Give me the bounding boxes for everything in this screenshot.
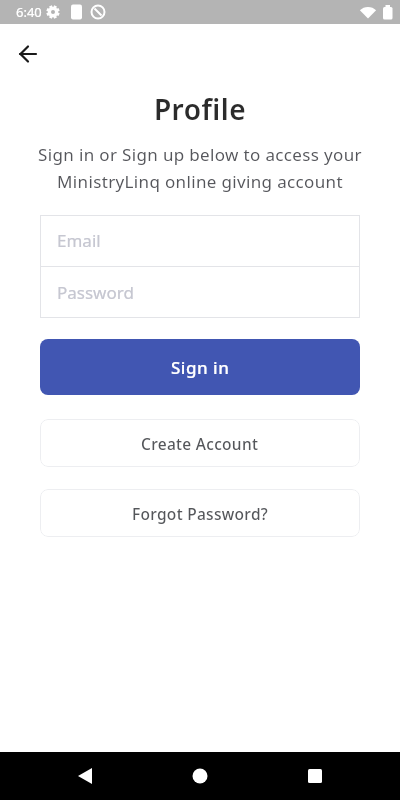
- staticText: Forgot Password?: [132, 503, 269, 524]
- staticText: Sign in or Sign up below to access your …: [0, 143, 400, 193]
- button[interactable]: Sign in: [40, 339, 360, 395]
- button[interactable]: [134, 752, 267, 800]
- button[interactable]: Create Account: [40, 419, 360, 467]
- staticText: Profile: [0, 90, 400, 128]
- staticText: Email: [57, 229, 101, 252]
- button[interactable]: Email: [40, 215, 360, 266]
- button[interactable]: Forgot Password?: [40, 489, 360, 537]
- button[interactable]: Password: [40, 267, 360, 318]
- staticText: 6:40: [16, 3, 42, 21]
- button[interactable]: [0, 752, 134, 800]
- staticText: Create Account: [141, 433, 259, 454]
- button[interactable]: [267, 752, 400, 800]
- staticText: Sign in: [171, 356, 230, 379]
- button[interactable]: [18, 44, 38, 64]
- staticText: Password: [57, 281, 134, 304]
